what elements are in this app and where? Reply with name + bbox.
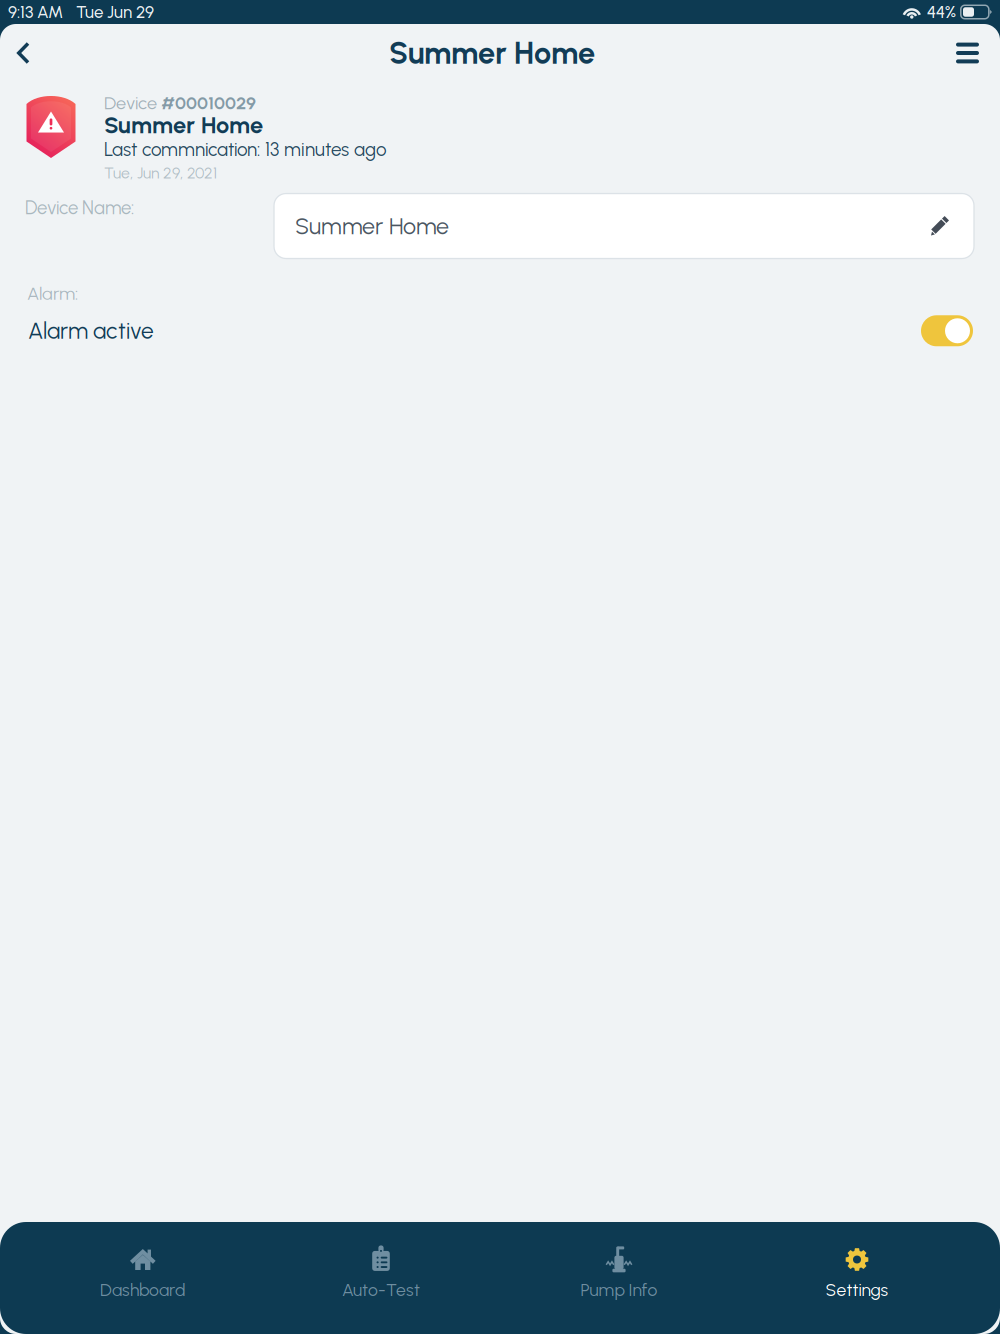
staticText: Last commnication: 13 minutes ago <box>104 138 387 161</box>
staticText: Summer Home <box>104 111 263 139</box>
button[interactable]: Pump Info <box>500 1217 738 1334</box>
staticText: Auto-Test <box>342 1279 420 1300</box>
staticText: Settings <box>825 1279 888 1300</box>
staticText: Dashboard <box>100 1279 186 1300</box>
button[interactable]: Menu <box>936 29 1000 77</box>
staticText: Tue, Jun 29, 2021 <box>104 164 217 182</box>
button[interactable]: Back <box>0 29 49 76</box>
staticText: Pump Info <box>580 1279 657 1300</box>
button[interactable]: Dashboard <box>24 1217 262 1334</box>
staticText: Alarm: <box>27 282 78 304</box>
button[interactable]: Settings <box>738 1217 976 1334</box>
staticText: Tue Jun 29 <box>76 2 154 22</box>
staticText: Summer Home <box>295 212 449 240</box>
staticText: #00010029 <box>161 92 256 114</box>
staticText: Device <box>104 92 161 114</box>
button[interactable]: Alarm active <box>911 305 983 356</box>
staticText: Alarm active <box>28 317 154 344</box>
staticText: 44% <box>927 2 956 22</box>
staticText: 9:13 AM <box>8 2 63 22</box>
button[interactable]: Summer Home <box>274 193 974 258</box>
staticText: Device Name: <box>25 196 134 219</box>
button[interactable]: Auto-Test <box>262 1217 500 1334</box>
staticText: Summer Home <box>389 35 595 71</box>
